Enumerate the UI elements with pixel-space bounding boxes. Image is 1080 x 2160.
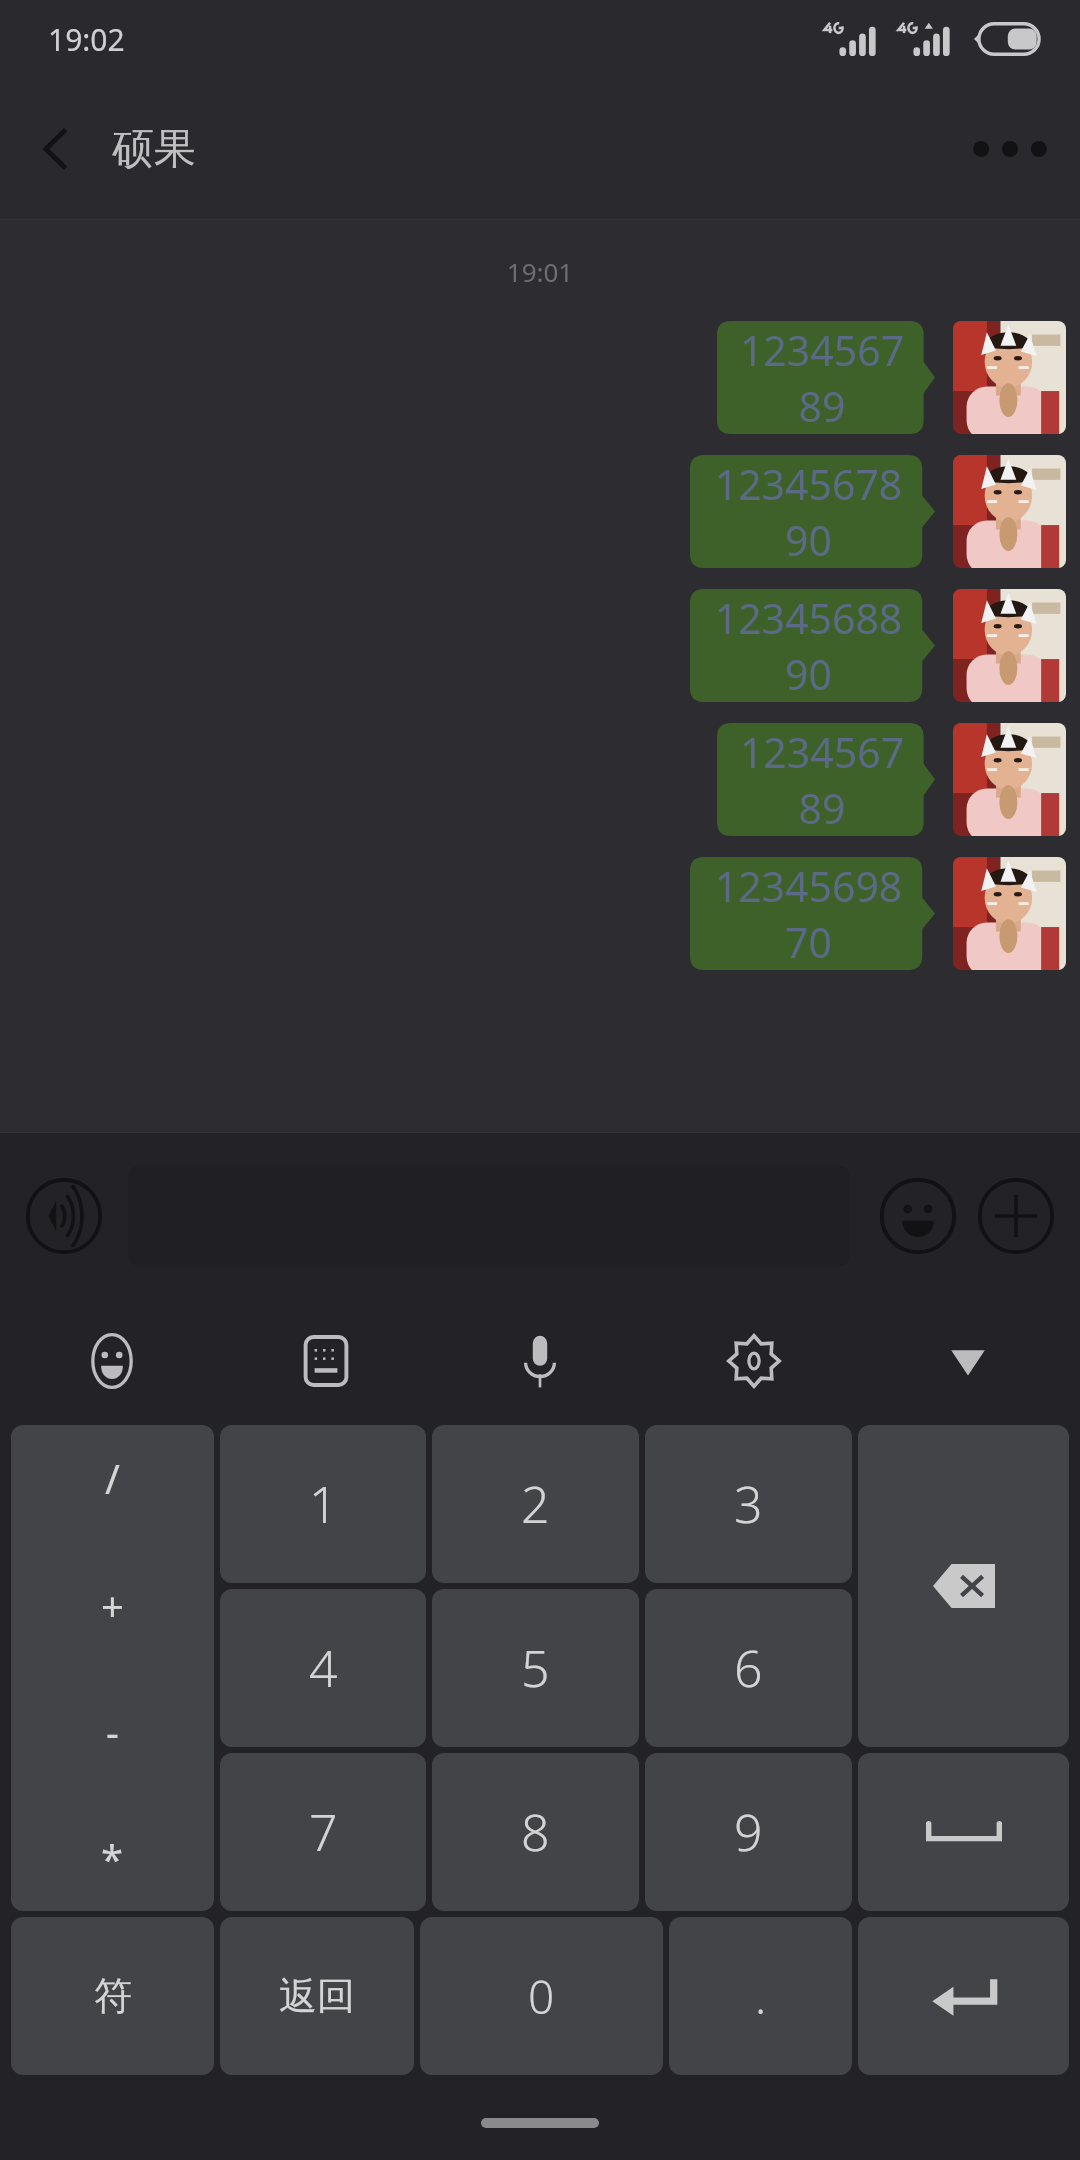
staticText: 19:02 (48, 19, 125, 60)
staticText: 7 (309, 1798, 338, 1866)
button[interactable]: 返回 (220, 1917, 414, 2075)
staticText: 1234567890 (712, 456, 905, 568)
button[interactable]: 0 (420, 1917, 663, 2075)
staticText: 123456789 (739, 724, 905, 836)
staticText: 返回 (279, 1972, 355, 2020)
button[interactable]: Add attachment (974, 1174, 1058, 1258)
staticText: 0 (528, 1965, 555, 2028)
staticText: 4 (309, 1634, 338, 1702)
button[interactable]: 5 (432, 1589, 639, 1747)
button[interactable]: Avatar (953, 723, 1066, 836)
button[interactable]: 4 (220, 1589, 426, 1747)
button[interactable]: 6 (645, 1589, 852, 1747)
button[interactable]: Settings (712, 1319, 796, 1403)
staticText: 9 (734, 1798, 763, 1866)
button[interactable]: Emoji (876, 1174, 960, 1258)
button[interactable]: Avatar (953, 857, 1066, 970)
button[interactable]: Voice (498, 1319, 582, 1403)
staticText: 6 (734, 1634, 763, 1702)
button[interactable]: 9 (645, 1753, 852, 1911)
button[interactable]: Back (14, 107, 98, 191)
staticText: 8 (521, 1798, 550, 1866)
staticText: 123456789 (739, 322, 905, 434)
button[interactable]: / (11, 1425, 214, 1911)
staticText: 19:01 (0, 254, 1080, 289)
staticText: 1234569870 (712, 858, 905, 970)
button[interactable]: 1234568890 (690, 589, 935, 702)
staticText: / (105, 1451, 120, 1505)
button[interactable]: Avatar (953, 321, 1066, 434)
button[interactable]: 3 (645, 1425, 852, 1583)
button[interactable]: Avatar (953, 455, 1066, 568)
staticText: * (101, 1831, 124, 1885)
staticText: 符 (94, 1972, 132, 2020)
staticText: + (101, 1578, 124, 1632)
button[interactable]: 2 (432, 1425, 639, 1583)
staticText: . (755, 1965, 767, 2028)
button[interactable]: 7 (220, 1753, 426, 1911)
button[interactable]: Keyboard (284, 1319, 368, 1403)
button[interactable]: 1 (220, 1425, 426, 1583)
button[interactable]: Voice input (22, 1174, 106, 1258)
staticText: 3 (734, 1470, 763, 1538)
button[interactable]: 1234567890 (690, 455, 935, 568)
button[interactable]: Emoji keyboard (70, 1319, 154, 1403)
button[interactable]: Enter (858, 1917, 1069, 2075)
button[interactable]: 1234569870 (690, 857, 935, 970)
button[interactable]: 123456789 (717, 723, 935, 836)
button[interactable]: 符 (11, 1917, 214, 2075)
staticText: 1234568890 (712, 590, 905, 702)
button[interactable]: 123456789 (717, 321, 935, 434)
button[interactable]: More options (962, 109, 1058, 189)
staticText: 2 (521, 1470, 550, 1538)
staticText: 1 (309, 1470, 338, 1538)
button[interactable]: . (669, 1917, 852, 2075)
button[interactable]: Backspace (858, 1425, 1069, 1747)
staticText: 硕果 (112, 123, 196, 176)
button[interactable]: Avatar (953, 589, 1066, 702)
staticText: - (106, 1704, 119, 1758)
button[interactable]: Space (858, 1753, 1069, 1911)
button[interactable]: 8 (432, 1753, 639, 1911)
button[interactable]: Hide keyboard (926, 1319, 1010, 1403)
staticText: 5 (521, 1634, 550, 1702)
